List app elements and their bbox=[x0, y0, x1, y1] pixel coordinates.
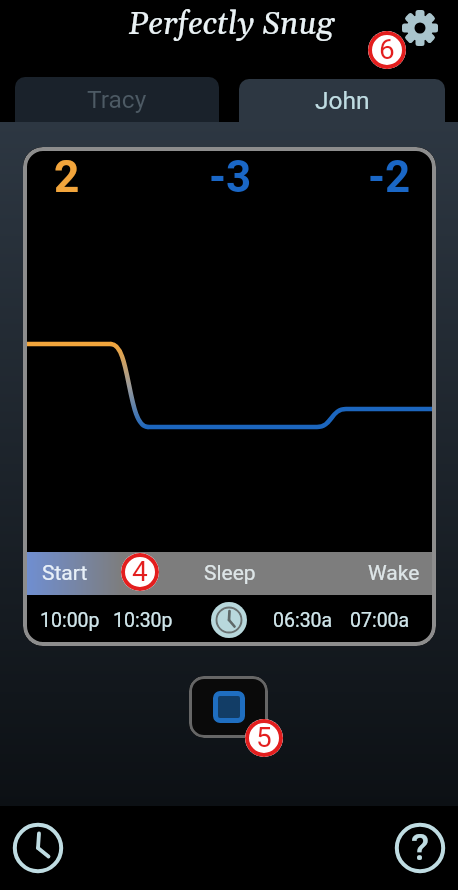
staticText: Sleep bbox=[204, 561, 256, 586]
button[interactable] bbox=[189, 676, 268, 738]
button[interactable] bbox=[211, 602, 247, 638]
staticText: -3 bbox=[209, 151, 252, 203]
staticText: Perfectly Snug bbox=[129, 5, 335, 45]
staticText: Start bbox=[42, 561, 88, 586]
staticText: 06:30a bbox=[273, 609, 333, 632]
staticText: -2 bbox=[368, 151, 411, 203]
staticText: ? bbox=[411, 826, 430, 869]
staticText: 5 bbox=[256, 721, 272, 754]
staticText: John bbox=[315, 86, 370, 115]
button[interactable]: ? bbox=[396, 824, 444, 872]
staticText: 10:00p bbox=[40, 609, 100, 632]
staticText: 6 bbox=[379, 33, 395, 66]
staticText: Tracy bbox=[87, 85, 147, 114]
button[interactable] bbox=[402, 10, 438, 46]
button[interactable]: Tracy bbox=[15, 77, 219, 122]
staticText: 07:00a bbox=[350, 609, 410, 632]
staticText: 2 bbox=[54, 151, 80, 203]
staticText: Wake bbox=[368, 561, 420, 586]
button[interactable] bbox=[14, 824, 62, 872]
staticText: 10:30p bbox=[113, 609, 173, 632]
button[interactable]: Start bbox=[23, 552, 436, 595]
button[interactable]: John bbox=[239, 79, 445, 122]
staticText: 4 bbox=[132, 555, 148, 588]
